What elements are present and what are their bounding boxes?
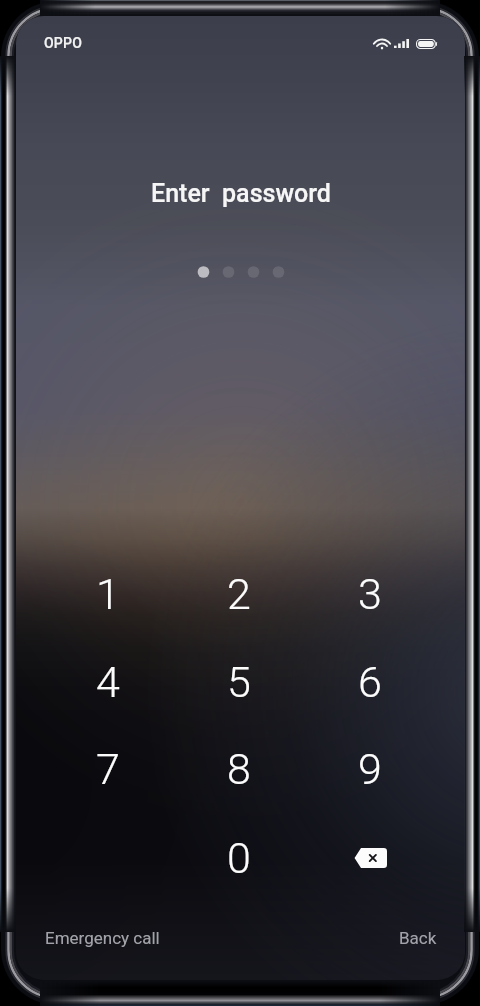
button[interactable]: 5	[181, 639, 297, 725]
staticText: 8	[227, 744, 251, 794]
button[interactable]: 2	[181, 551, 297, 637]
button[interactable]: Delete	[312, 815, 428, 901]
button[interactable]: Emergency call	[37, 922, 168, 954]
button[interactable]: 0	[181, 815, 297, 901]
staticText: 6	[358, 657, 382, 707]
staticText: Back	[399, 928, 437, 948]
button[interactable]: 4	[50, 639, 166, 725]
staticText: 2	[227, 569, 251, 619]
button[interactable]: 7	[50, 726, 166, 812]
button[interactable]: 6	[312, 639, 428, 725]
staticText: 4	[96, 657, 120, 707]
button[interactable]: Back	[391, 922, 445, 954]
button[interactable]: 8	[181, 726, 297, 812]
staticText: 5	[227, 657, 251, 707]
staticText: 0	[227, 833, 251, 883]
staticText: OPPO	[44, 35, 83, 51]
staticText: 7	[96, 744, 120, 794]
staticText: Enter password	[151, 179, 331, 208]
button[interactable]: 3	[312, 551, 428, 637]
staticText: 3	[358, 569, 382, 619]
staticText: Emergency call	[45, 928, 160, 948]
staticText: 1	[96, 569, 120, 619]
button[interactable]: 9	[312, 726, 428, 812]
button[interactable]: 1	[50, 551, 166, 637]
staticText: 9	[358, 744, 382, 794]
